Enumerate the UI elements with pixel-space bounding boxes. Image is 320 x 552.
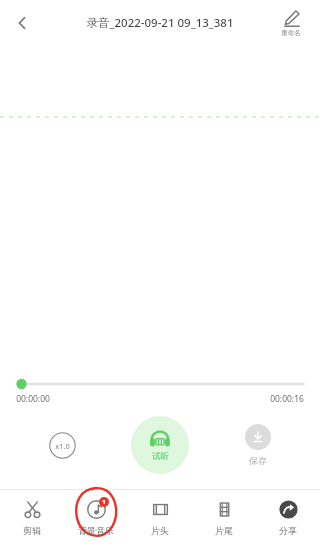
button[interactable]: 重命名 [270,8,312,39]
staticText: 试听 [152,451,169,462]
button[interactable]: 保存 [208,413,308,477]
button[interactable]: x1.0 [12,413,112,477]
staticText: 00:00:00 [16,393,50,405]
button[interactable]: 试听 [131,416,189,474]
staticText: 1 [102,498,106,506]
button[interactable]: 剪辑 [0,490,64,552]
button[interactable]: 片尾 [192,490,256,552]
staticText: 分享 [279,525,297,536]
button[interactable]: 1 [64,490,128,552]
staticText: 片尾 [215,525,233,536]
staticText: x1.0 [55,441,70,451]
staticText: 剪辑 [23,525,41,536]
button[interactable]: 分享 [256,490,320,552]
staticText: 保存 [249,455,267,466]
staticText: 00:00:16 [270,393,304,405]
staticText: 录音_2022-09-21 09_13_381 [86,15,234,31]
staticText: 片头 [151,525,169,536]
staticText: 背景音乐 [78,525,114,536]
button[interactable]: 片头 [128,490,192,552]
button[interactable]: Playback position [16,377,304,391]
staticText: 重命名 [281,29,301,37]
button[interactable]: Back [0,1,44,45]
